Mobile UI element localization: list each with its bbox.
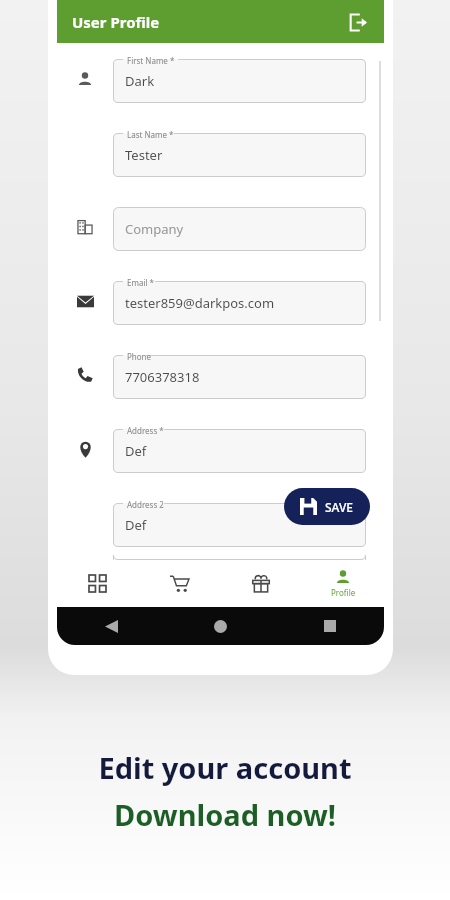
staticText: First Name * <box>127 55 175 66</box>
button[interactable]: Company <box>113 203 366 251</box>
staticText: Last Name * <box>127 129 174 140</box>
staticText: 7706378318 <box>125 368 200 386</box>
staticText: Tester <box>125 146 163 164</box>
staticText: tester859@darkpos.com <box>125 294 275 312</box>
button[interactable]: tester859@darkpos.com <box>113 277 366 325</box>
button[interactable]: Def <box>113 499 366 547</box>
button[interactable]: 7706378318 <box>113 351 366 399</box>
staticText: Address 2 <box>127 499 164 510</box>
button[interactable]: Cart <box>138 560 220 607</box>
button[interactable]: Offers <box>220 560 302 607</box>
button[interactable]: Dashboard <box>57 560 138 607</box>
staticText: Dark <box>125 72 155 90</box>
button[interactable]: SAVE <box>284 488 370 525</box>
staticText: Phone <box>127 351 152 362</box>
button[interactable]: Back <box>57 607 166 645</box>
staticText: Company <box>125 220 184 238</box>
staticText: SAVE <box>325 499 354 515</box>
staticText: Profile <box>331 587 356 598</box>
staticText: Def <box>125 516 147 534</box>
staticText: Email * <box>127 277 155 288</box>
button[interactable]: Logout <box>342 7 372 37</box>
button[interactable]: Profile <box>302 560 384 607</box>
button[interactable]: Def <box>113 425 366 473</box>
button[interactable]: Dark <box>113 55 366 103</box>
staticText: Edit your account <box>98 748 352 787</box>
staticText: Address * <box>127 425 164 436</box>
button[interactable]: Tester <box>113 129 366 177</box>
button[interactable]: Recents <box>275 607 384 645</box>
staticText: User Profile <box>72 12 160 32</box>
staticText: Download now! <box>114 795 336 834</box>
button[interactable]: Home <box>166 607 275 645</box>
staticText: Def <box>125 442 147 460</box>
